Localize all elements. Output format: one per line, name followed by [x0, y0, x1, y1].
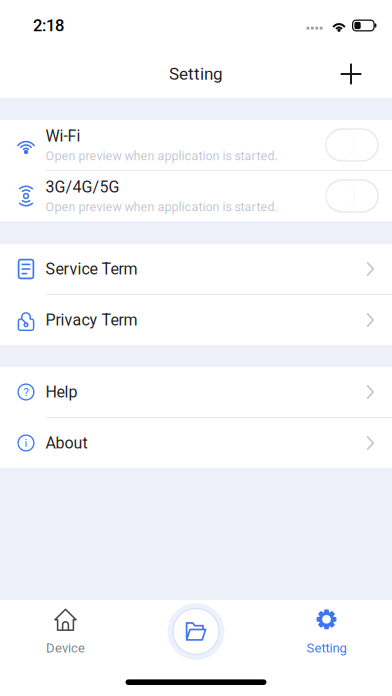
staticText: About [45, 434, 87, 452]
staticText: Service Term [45, 260, 137, 278]
button[interactable]: i [0, 418, 392, 468]
staticText: Device [46, 640, 85, 656]
button[interactable]: ? [0, 367, 392, 417]
button[interactable]: Service Term [0, 244, 392, 294]
staticText: Setting [169, 64, 223, 84]
staticText: i [24, 436, 27, 450]
staticText: Privacy Term [45, 311, 137, 329]
button[interactable]: Add [329, 44, 373, 98]
staticText: Open preview when application is started… [45, 199, 277, 214]
staticText: 2:18 [33, 16, 64, 35]
staticText: Help [45, 383, 77, 401]
staticText: 3G/4G/5G [45, 178, 119, 197]
button[interactable]: 3G/4G/5G [326, 180, 378, 212]
button[interactable]: Device [0, 610, 131, 654]
button[interactable]: Privacy Term [0, 295, 392, 345]
staticText: Wi-Fi [45, 127, 80, 146]
button[interactable]: Wi-Fi [326, 129, 378, 161]
staticText: ? [23, 385, 28, 399]
button[interactable]: Setting [261, 610, 392, 654]
staticText: Open preview when application is started… [45, 148, 277, 163]
staticText: Setting [306, 640, 346, 656]
button[interactable]: Files [167, 603, 224, 660]
